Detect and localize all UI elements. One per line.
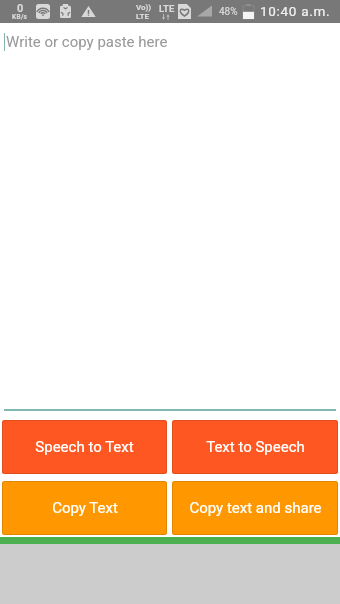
button[interactable]: Copy Text <box>2 481 167 535</box>
staticText: KB/s <box>12 13 28 21</box>
staticText: LTE <box>159 3 175 14</box>
button[interactable]: Copy text and share <box>172 481 338 535</box>
staticText: 48% <box>219 6 238 18</box>
staticText: Text to Speech <box>206 438 305 456</box>
staticText: Write or copy paste here <box>6 33 168 51</box>
staticText: Copy text and share <box>189 499 322 517</box>
staticText: 0 <box>17 2 24 15</box>
staticText: 10:40 a.m. <box>260 3 331 19</box>
staticText: Vo)) <box>136 3 152 12</box>
staticText: Copy Text <box>52 499 118 517</box>
staticText: Speech to Text <box>35 438 134 456</box>
staticText: LTE <box>136 12 149 21</box>
button[interactable]: Write or copy paste here <box>0 23 340 411</box>
button[interactable]: Speech to Text <box>2 420 167 474</box>
button[interactable]: Text to Speech <box>172 420 338 474</box>
